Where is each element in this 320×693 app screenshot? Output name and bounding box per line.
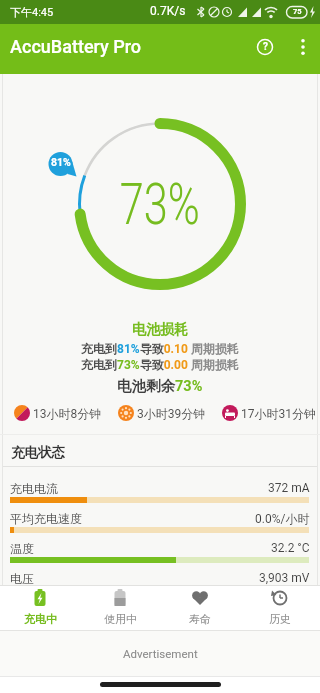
- staticText: 电池损耗: [132, 321, 188, 339]
- staticText: 电池剩余73%: [117, 377, 203, 395]
- staticText: 0.7K/s: [150, 4, 186, 18]
- staticText: 75: [293, 7, 302, 16]
- button[interactable]: [289, 31, 317, 63]
- staticText: 3小时39分钟: [137, 406, 206, 421]
- button[interactable]: 寿命: [160, 585, 240, 630]
- staticText: 372 mA: [268, 481, 310, 495]
- staticText: 32.2 °C: [271, 541, 310, 555]
- button[interactable]: 充电中: [0, 585, 80, 630]
- staticText: 17小时31分钟: [241, 406, 316, 421]
- staticText: 历史: [269, 612, 291, 626]
- staticText: 电压: [10, 571, 34, 586]
- staticText: 充电状态: [11, 444, 65, 461]
- staticText: 3,903 mV: [259, 571, 310, 585]
- staticText: ?: [263, 41, 268, 53]
- staticText: 0.0%/小时: [255, 511, 310, 526]
- staticText: AccuBattery Pro: [10, 36, 142, 57]
- staticText: 使用中: [104, 612, 137, 626]
- staticText: 81%: [51, 156, 71, 168]
- button[interactable]: 历史: [240, 585, 320, 630]
- button[interactable]: ?: [249, 31, 281, 63]
- staticText: 平均充电速度: [10, 511, 82, 526]
- staticText: 充电中: [24, 612, 57, 626]
- staticText: 温度: [10, 541, 34, 556]
- staticText: 73%: [120, 171, 200, 238]
- staticText: 充电到73%导致0.00 周期损耗: [81, 357, 239, 372]
- staticText: 寿命: [189, 612, 211, 626]
- staticText: Advertisement: [123, 647, 198, 660]
- button[interactable]: Advertisement: [0, 630, 320, 676]
- staticText: 下午4:45: [10, 5, 54, 19]
- staticText: 充电到81%导致0.10 周期损耗: [81, 341, 239, 356]
- staticText: 充电电流: [10, 481, 58, 496]
- button[interactable]: 使用中: [80, 585, 160, 630]
- staticText: 13小时8分钟: [33, 406, 102, 421]
